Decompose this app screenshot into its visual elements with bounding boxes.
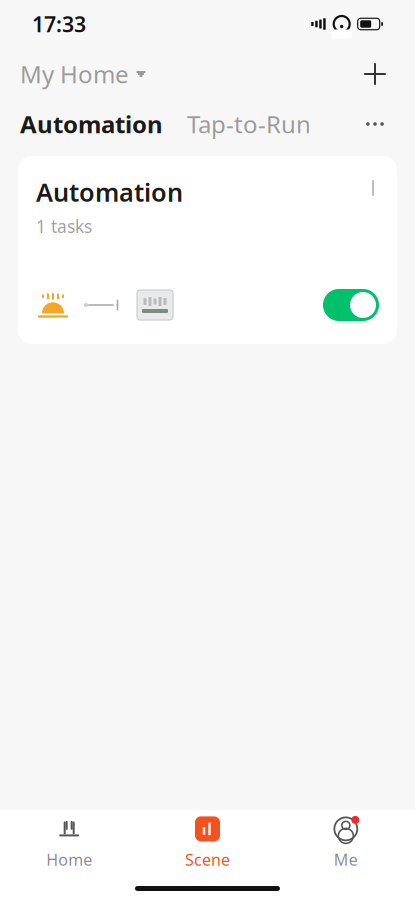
button[interactable]: Automation enabled (323, 289, 379, 321)
button[interactable]: Scene (138, 812, 277, 874)
button[interactable]: Tap-to-Run (187, 100, 311, 148)
staticText: 17:33 (32, 10, 86, 38)
button[interactable]: Home (0, 812, 138, 874)
button[interactable]: Add (355, 54, 395, 94)
staticText: Automation (36, 175, 183, 209)
staticText: 1 tasks (36, 215, 92, 238)
staticText: Home (46, 849, 92, 870)
button[interactable]: My Home (20, 52, 146, 96)
button[interactable]: Automation (20, 100, 163, 148)
button[interactable]: More options (355, 104, 395, 144)
staticText: My Home (20, 58, 129, 90)
button[interactable]: Me (277, 812, 415, 874)
staticText: Automation (20, 108, 163, 140)
staticText: Me (334, 849, 358, 870)
staticText: Tap-to-Run (187, 108, 311, 140)
staticText: Scene (185, 849, 230, 870)
button[interactable]: Automation (18, 156, 397, 344)
